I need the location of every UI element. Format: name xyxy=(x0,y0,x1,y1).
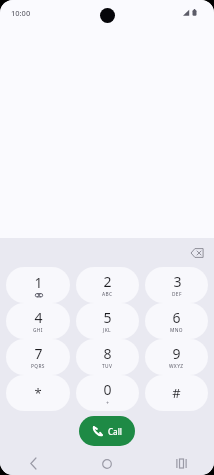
staticText: DEF xyxy=(172,291,182,298)
button[interactable]: 1 xyxy=(6,267,70,303)
staticText: 1 xyxy=(34,273,43,292)
staticText: 2 xyxy=(103,272,112,291)
staticText: TUV xyxy=(102,363,113,370)
staticText: GHI xyxy=(33,327,43,334)
button[interactable]: 4 xyxy=(6,303,70,339)
staticText: WXYZ xyxy=(169,363,184,370)
staticText: 8 xyxy=(103,344,112,363)
staticText: * xyxy=(34,384,42,402)
button[interactable]: 9 xyxy=(145,339,208,375)
staticText: 0 xyxy=(103,380,112,399)
staticText: MNO xyxy=(170,327,183,334)
button[interactable]: * xyxy=(6,375,70,411)
button[interactable]: # xyxy=(145,375,208,411)
staticText: 10:00 xyxy=(11,8,31,18)
button[interactable]: 6 xyxy=(145,303,208,339)
staticText: PQRS xyxy=(31,363,45,370)
staticText: 9 xyxy=(172,344,181,363)
staticText: 4 xyxy=(34,308,43,327)
staticText: ABC xyxy=(102,291,113,298)
staticText: 5 xyxy=(103,308,112,327)
button[interactable]: 0 xyxy=(76,375,139,411)
staticText: JKL xyxy=(103,327,112,334)
staticText: 7 xyxy=(34,344,43,363)
staticText: # xyxy=(172,384,181,402)
button[interactable]: 5 xyxy=(76,303,139,339)
button[interactable]: 3 xyxy=(145,267,208,303)
button[interactable]: 7 xyxy=(6,339,70,375)
button[interactable]: Back xyxy=(18,452,48,475)
staticText: 3 xyxy=(173,272,182,291)
staticText: + xyxy=(106,399,110,406)
button[interactable]: Recent apps xyxy=(166,452,196,475)
button[interactable]: Backspace xyxy=(186,242,208,264)
button[interactable]: 8 xyxy=(76,339,139,375)
staticText: 6 xyxy=(172,308,181,327)
staticText: Call xyxy=(108,426,122,437)
button[interactable]: Call xyxy=(79,416,135,446)
button[interactable]: 2 xyxy=(76,267,139,303)
button[interactable]: Home xyxy=(92,452,122,475)
